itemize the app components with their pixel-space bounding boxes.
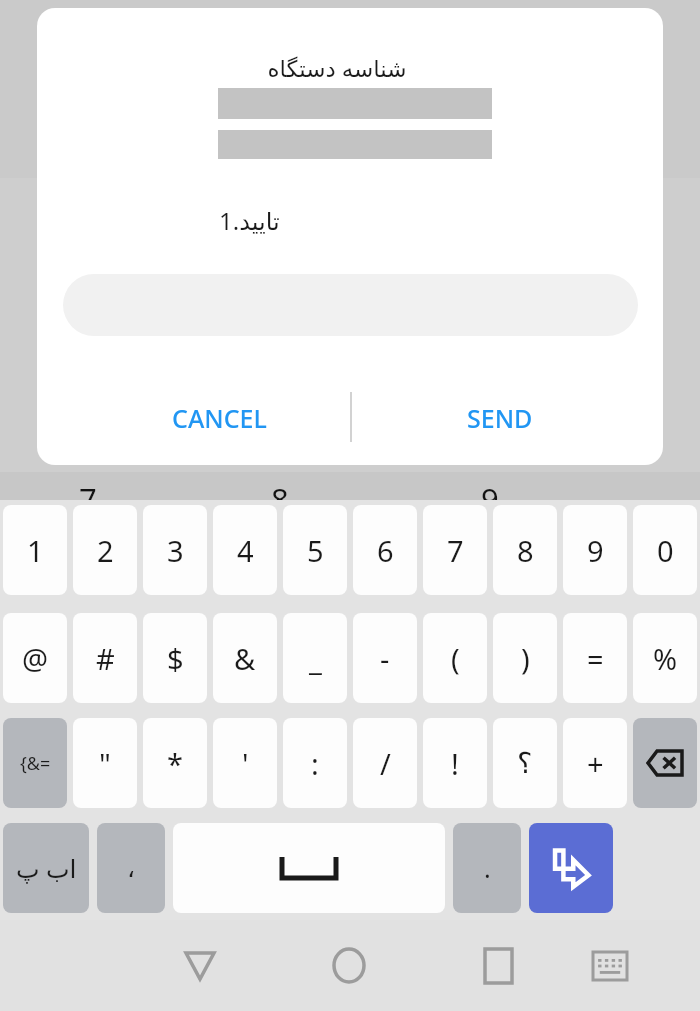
button[interactable]: CANCEL bbox=[97, 384, 342, 452]
staticText: ! bbox=[451, 744, 459, 783]
staticText: 7 bbox=[447, 531, 464, 570]
staticText: CANCEL bbox=[172, 401, 267, 435]
button[interactable]: 2 bbox=[73, 505, 137, 595]
button[interactable]: 5 bbox=[283, 505, 347, 595]
button[interactable]: Backspace bbox=[633, 718, 697, 808]
staticText: 5 bbox=[307, 531, 324, 570]
staticText: تایید.1 bbox=[219, 204, 280, 237]
staticText: 8 bbox=[517, 531, 534, 570]
button[interactable]: Back bbox=[150, 920, 250, 1011]
button[interactable]: ( bbox=[423, 613, 487, 703]
staticText: 0 bbox=[657, 531, 674, 570]
button[interactable]: اب پ bbox=[3, 823, 89, 913]
button[interactable]: Recents bbox=[448, 920, 548, 1011]
button[interactable]: 8 bbox=[493, 505, 557, 595]
button[interactable]: * bbox=[143, 718, 207, 808]
button[interactable]: 6 bbox=[353, 505, 417, 595]
staticText: 7 bbox=[79, 478, 97, 508]
button[interactable]: 1 bbox=[3, 505, 67, 595]
staticText: 4 bbox=[237, 531, 254, 570]
staticText: ) bbox=[521, 639, 530, 678]
button[interactable]: " bbox=[73, 718, 137, 808]
staticText: ( bbox=[451, 639, 460, 678]
staticText: ، bbox=[127, 854, 136, 883]
button[interactable]: ، bbox=[97, 823, 165, 913]
staticText: + bbox=[587, 744, 604, 783]
staticText: {&= bbox=[20, 751, 51, 776]
staticText: 1 bbox=[27, 531, 44, 570]
button[interactable]: 9 bbox=[563, 505, 627, 595]
button[interactable]: SEND bbox=[377, 384, 622, 452]
button[interactable]: {&= bbox=[3, 718, 67, 808]
button[interactable]: Enter bbox=[529, 823, 613, 913]
button[interactable]: # bbox=[73, 613, 137, 703]
staticText: & bbox=[234, 639, 256, 678]
button[interactable]: $ bbox=[143, 613, 207, 703]
staticText: $ bbox=[167, 639, 184, 678]
button[interactable]: Space bbox=[173, 823, 445, 913]
staticText: ؟ bbox=[517, 746, 533, 780]
staticText: " bbox=[99, 744, 111, 783]
button[interactable]: Home bbox=[299, 920, 399, 1011]
staticText: * bbox=[167, 744, 183, 783]
staticText: . bbox=[484, 851, 491, 885]
button[interactable]: : bbox=[283, 718, 347, 808]
button[interactable]: / bbox=[353, 718, 417, 808]
button[interactable]: - bbox=[353, 613, 417, 703]
staticText: 8 bbox=[271, 478, 289, 508]
button[interactable]: @ bbox=[3, 613, 67, 703]
button[interactable]: 3 bbox=[143, 505, 207, 595]
staticText: اب پ bbox=[16, 851, 77, 885]
button[interactable]: . bbox=[453, 823, 521, 913]
button[interactable]: = bbox=[563, 613, 627, 703]
button[interactable]: ' bbox=[213, 718, 277, 808]
button[interactable]: + bbox=[563, 718, 627, 808]
button[interactable]: ! bbox=[423, 718, 487, 808]
staticText: 6 bbox=[377, 531, 394, 570]
staticText: @ bbox=[22, 639, 49, 678]
staticText: SEND bbox=[467, 401, 533, 435]
staticText: # bbox=[96, 639, 115, 678]
staticText: - bbox=[380, 639, 390, 678]
button[interactable]: 4 bbox=[213, 505, 277, 595]
staticText: % bbox=[653, 639, 678, 678]
button[interactable]: ) bbox=[493, 613, 557, 703]
staticText: / bbox=[380, 744, 391, 783]
button[interactable]: 7 bbox=[423, 505, 487, 595]
staticText: 9 bbox=[587, 531, 604, 570]
button[interactable]: Hide keyboard bbox=[565, 920, 655, 1011]
staticText: 3 bbox=[167, 531, 184, 570]
staticText: ' bbox=[242, 744, 249, 783]
button[interactable]: ؟ bbox=[493, 718, 557, 808]
staticText: 9 bbox=[481, 478, 499, 508]
staticText: 2 bbox=[97, 531, 114, 570]
button[interactable]: & bbox=[213, 613, 277, 703]
button[interactable]: % bbox=[633, 613, 697, 703]
staticText: : bbox=[311, 744, 319, 783]
staticText: _ bbox=[309, 639, 322, 678]
button[interactable]: _ bbox=[283, 613, 347, 703]
staticText: شناسه دستگاه bbox=[187, 52, 487, 83]
staticText: = bbox=[587, 639, 604, 678]
button[interactable]: 0 bbox=[633, 505, 697, 595]
